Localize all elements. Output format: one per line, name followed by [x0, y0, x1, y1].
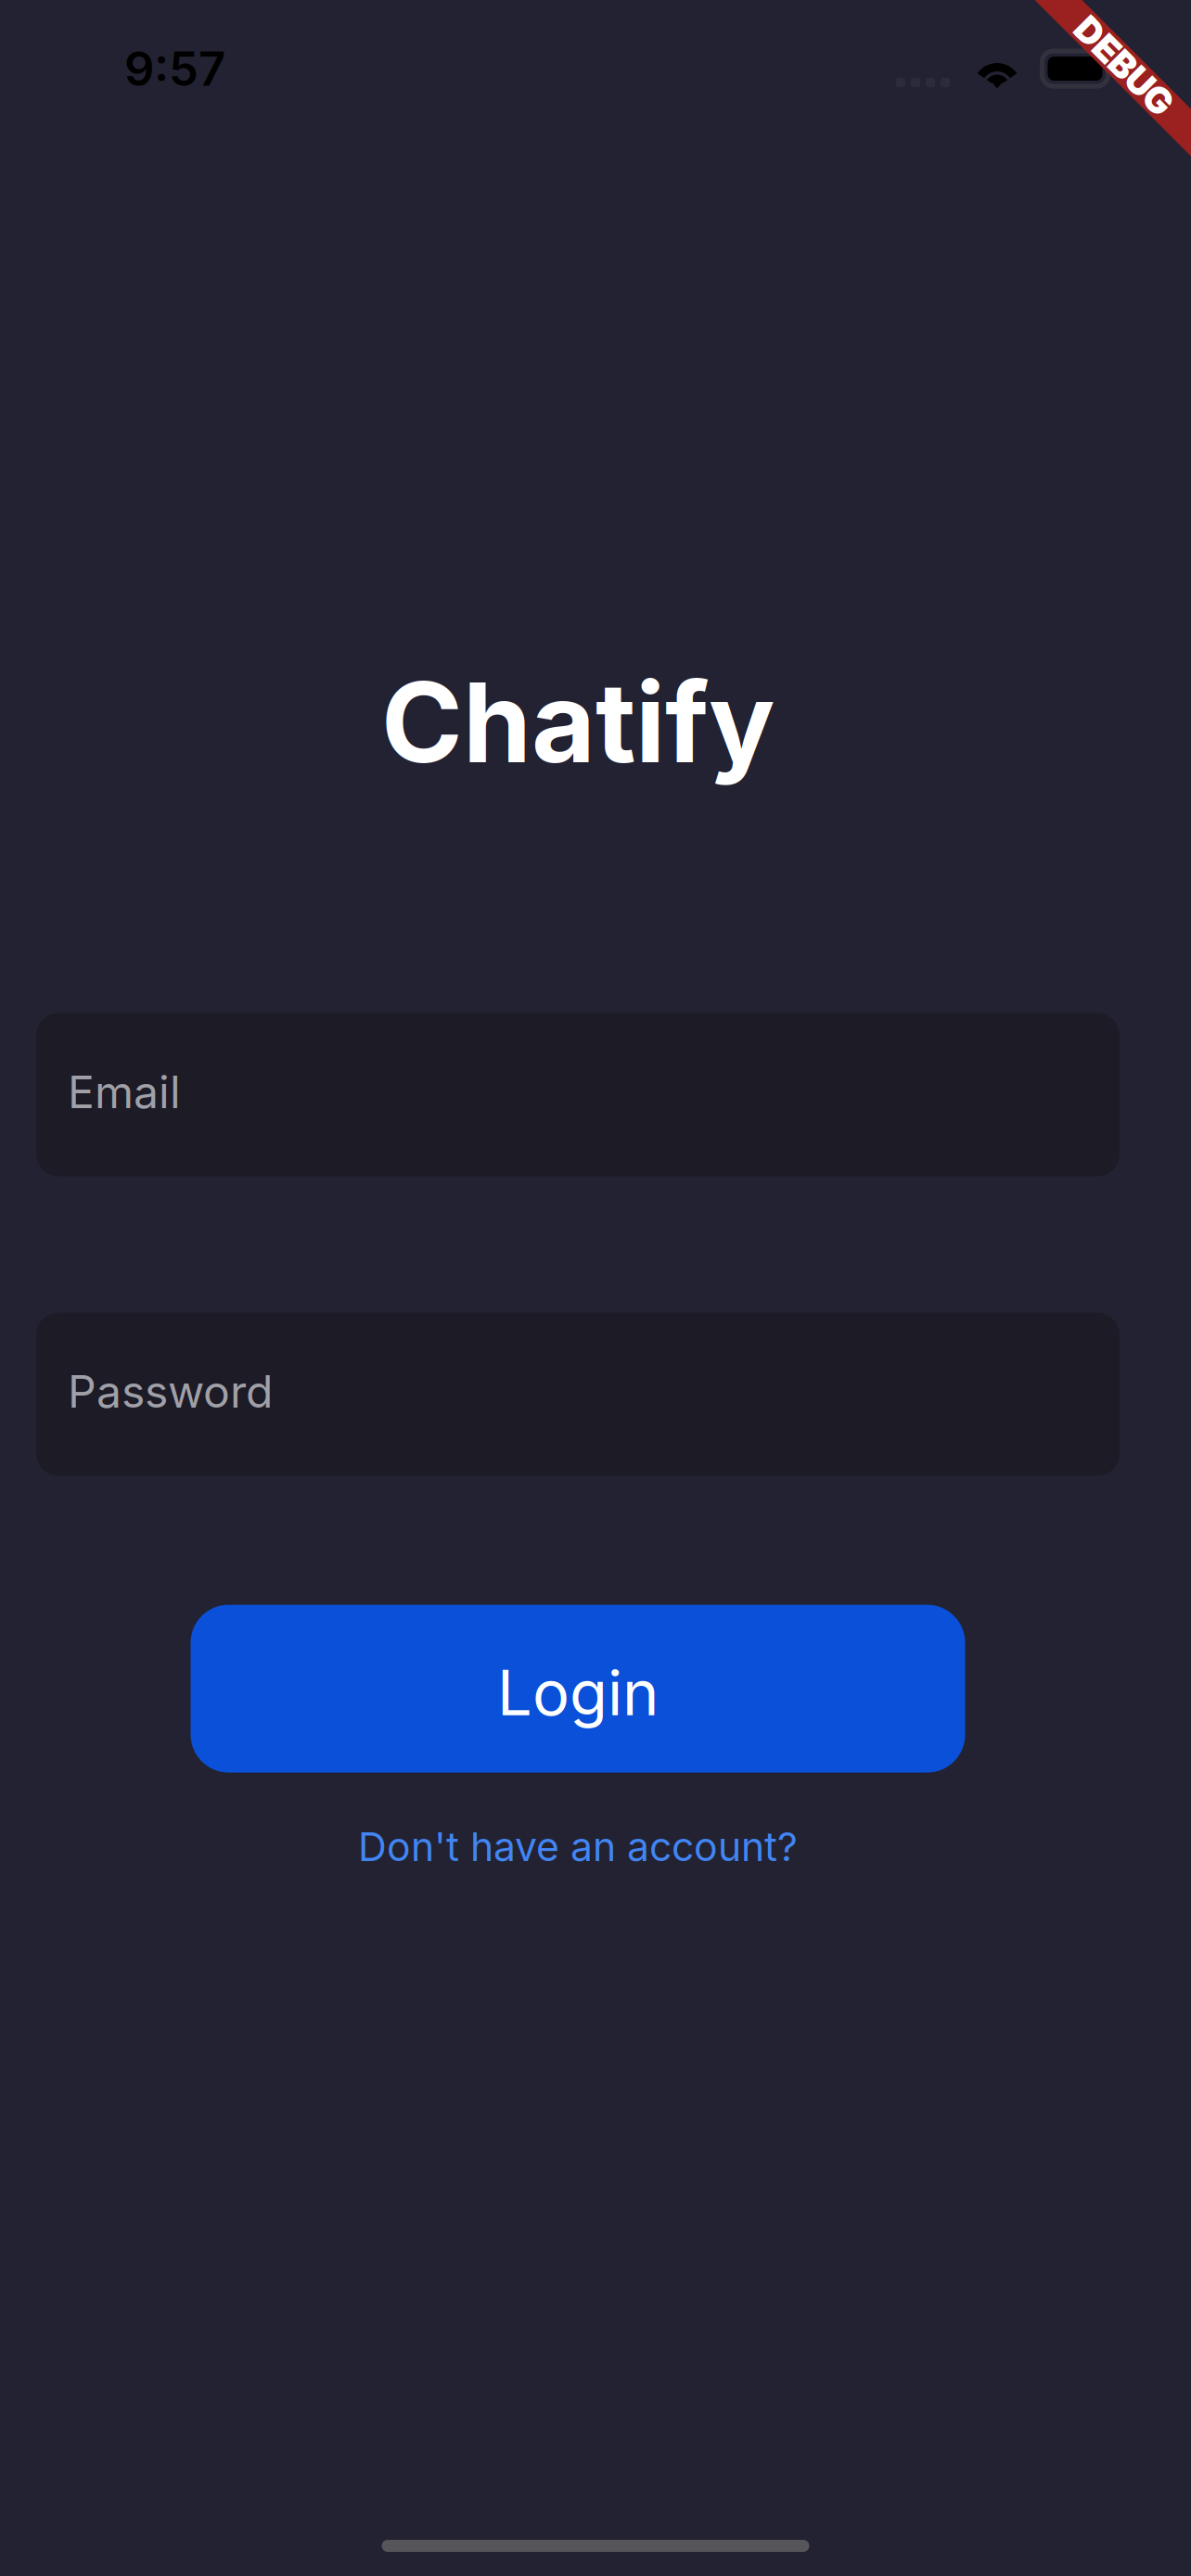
- staticText: Don't have an account?: [358, 1823, 798, 1871]
- button[interactable]: Email: [36, 1013, 1120, 1176]
- button[interactable]: Login: [191, 1605, 965, 1773]
- staticText: Password: [68, 1365, 273, 1418]
- button[interactable]: Don't have an account?: [358, 1823, 798, 1871]
- staticText: 9:57: [124, 40, 225, 97]
- button[interactable]: Password: [36, 1313, 1120, 1476]
- staticText: DEBUG: [1063, 44, 1186, 88]
- staticText: Login: [497, 1655, 659, 1730]
- staticText: Chatify: [381, 656, 775, 789]
- staticText: Email: [68, 1065, 181, 1119]
